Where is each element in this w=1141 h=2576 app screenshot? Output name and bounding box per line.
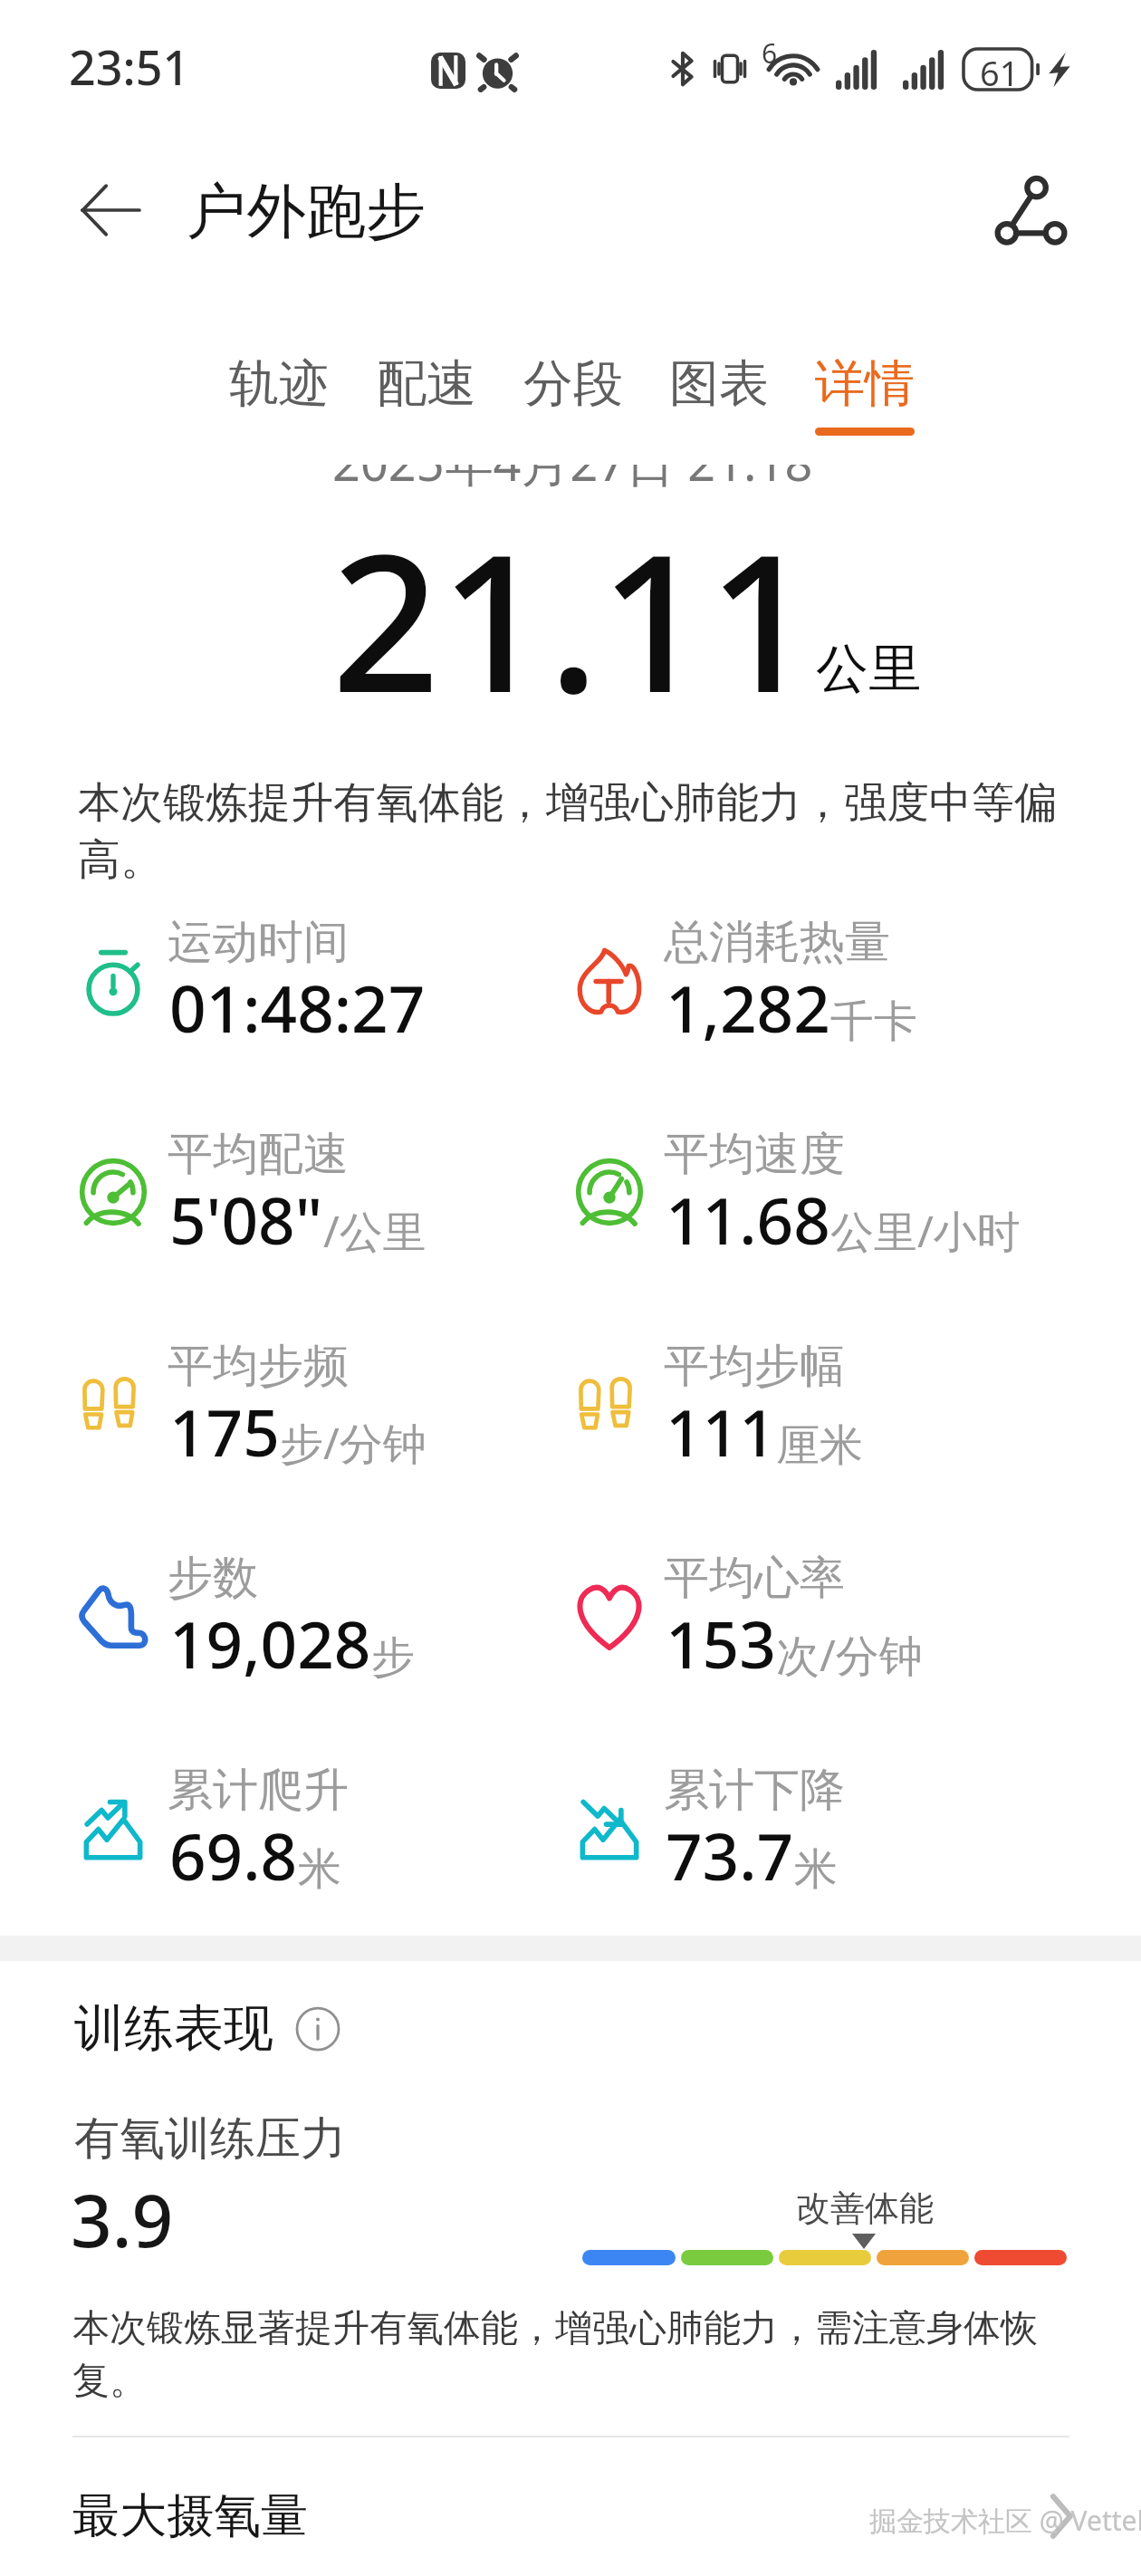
staticText: 次/分钟 bbox=[776, 1625, 923, 1685]
staticText: 米 bbox=[794, 1842, 838, 1897]
staticText: 有氧训练压力 bbox=[74, 2110, 346, 2167]
staticText: 步/分钟 bbox=[280, 1413, 427, 1473]
staticText: 累计爬升 bbox=[168, 1762, 349, 1819]
button[interactable]: 配速 bbox=[363, 352, 490, 448]
staticText: 训练表现 bbox=[74, 1997, 273, 2060]
staticText: 平均配速 bbox=[168, 1126, 349, 1183]
staticText: 户外跑步 bbox=[187, 174, 426, 249]
button[interactable]: Info bbox=[292, 2003, 344, 2055]
staticText: 153 bbox=[666, 1600, 776, 1687]
button[interactable]: 详情 bbox=[801, 352, 928, 448]
staticText: 图表 bbox=[669, 352, 769, 415]
staticText: 步 bbox=[371, 1630, 415, 1685]
staticText: 平均速度 bbox=[664, 1126, 845, 1183]
staticText: 19,028 bbox=[169, 1600, 371, 1687]
staticText: 累计下降 bbox=[664, 1762, 845, 1819]
staticText: 公里/小时 bbox=[830, 1201, 1021, 1261]
staticText: 73.7 bbox=[666, 1812, 794, 1899]
staticText: 米 bbox=[298, 1842, 341, 1897]
staticText: 本次锻炼显著提升有氧体能，增强心肺能力，需注意身体恢复。 bbox=[72, 2305, 1058, 2404]
staticText: 1,282 bbox=[666, 964, 830, 1052]
staticText: 01:48:27 bbox=[169, 964, 426, 1052]
staticText: 厘米 bbox=[776, 1418, 863, 1473]
button[interactable]: 轨迹 bbox=[216, 352, 342, 448]
staticText: 6 bbox=[762, 34, 778, 72]
staticText: 千卡 bbox=[830, 995, 917, 1049]
staticText: 改善体能 bbox=[796, 2187, 934, 2230]
staticText: 5'08" bbox=[169, 1176, 323, 1264]
button[interactable]: 最大摄氧量 bbox=[0, 2466, 1141, 2566]
staticText: 总消耗热量 bbox=[664, 914, 890, 971]
button[interactable]: Share bbox=[977, 159, 1082, 264]
staticText: /公里 bbox=[323, 1201, 427, 1261]
staticText: 11.68 bbox=[666, 1176, 830, 1264]
button[interactable]: 分段 bbox=[510, 352, 637, 448]
staticText: 本次锻炼提升有氧体能，增强心肺能力，强度中等偏高。 bbox=[78, 776, 1069, 887]
button[interactable]: Back bbox=[62, 161, 159, 259]
staticText: 分段 bbox=[523, 352, 623, 415]
staticText: 175 bbox=[169, 1388, 280, 1475]
staticText: 21.11 bbox=[331, 490, 817, 748]
staticText: 公里 bbox=[816, 636, 921, 702]
staticText: 69.8 bbox=[169, 1812, 298, 1899]
staticText: 111 bbox=[666, 1388, 776, 1475]
staticText: 平均心率 bbox=[664, 1550, 845, 1607]
staticText: 23:51 bbox=[69, 34, 190, 99]
staticText: 最大摄氧量 bbox=[72, 2486, 308, 2546]
staticText: 61 bbox=[980, 49, 1020, 96]
staticText: 掘金技术社区 @ Vettel bbox=[869, 2502, 1141, 2539]
staticText: 运动时间 bbox=[168, 914, 349, 971]
staticText: 2025年4月27日 21:18 bbox=[332, 465, 813, 490]
button[interactable]: 图表 bbox=[656, 352, 782, 448]
staticText: 配速 bbox=[377, 352, 476, 415]
staticText: 3.9 bbox=[71, 2169, 174, 2268]
staticText: 轨迹 bbox=[229, 352, 329, 415]
staticText: 平均步幅 bbox=[664, 1338, 845, 1395]
staticText: 步数 bbox=[168, 1550, 258, 1607]
staticText: 平均步频 bbox=[168, 1338, 349, 1395]
staticText: 详情 bbox=[815, 352, 915, 415]
